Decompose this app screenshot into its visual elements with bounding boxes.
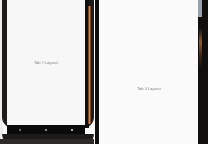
staticText: Tab 3 Layout xyxy=(137,86,161,91)
button[interactable]: Back xyxy=(7,125,33,135)
button[interactable]: Home xyxy=(33,125,59,135)
button[interactable]: Recents xyxy=(59,125,85,135)
staticText: Tab 1 Layout xyxy=(34,60,58,65)
button[interactable]: Tab 1 Layout xyxy=(7,0,85,125)
